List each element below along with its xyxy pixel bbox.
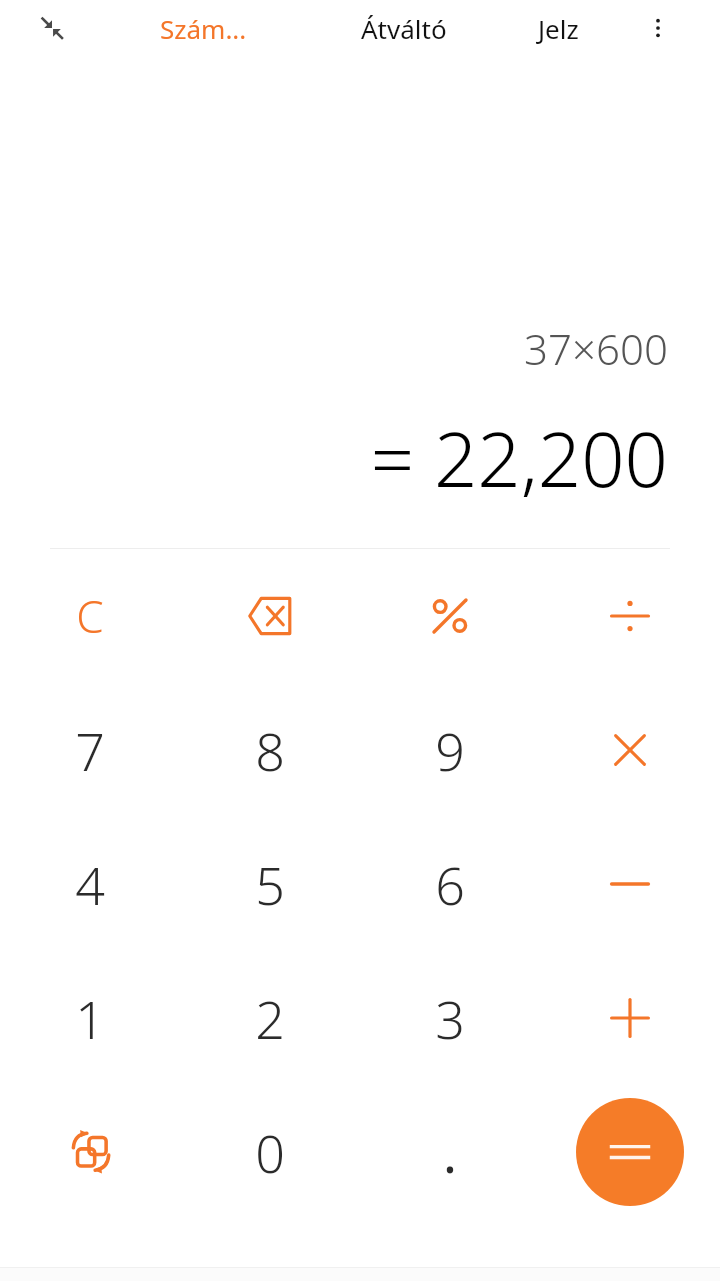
button[interactable]: 1 xyxy=(0,951,180,1085)
button[interactable]: Előzmények xyxy=(0,1085,180,1219)
staticText: 6 xyxy=(435,849,465,920)
button[interactable]: További lehetőségek xyxy=(636,6,680,50)
staticText: = 22,200 xyxy=(370,406,668,510)
staticText: Átváltó xyxy=(361,11,447,46)
button[interactable]: Szorzás xyxy=(540,683,720,817)
staticText: Szám... xyxy=(160,11,247,46)
button[interactable]: . xyxy=(360,1085,540,1219)
staticText: C xyxy=(76,586,104,646)
button[interactable]: 8 xyxy=(180,683,360,817)
staticText: 8 xyxy=(255,715,285,786)
staticText: 7 xyxy=(75,715,105,786)
button[interactable]: 7 xyxy=(0,683,180,817)
staticText: 9 xyxy=(435,715,465,786)
button[interactable]: Összecsukás xyxy=(30,6,74,50)
button[interactable]: 6 xyxy=(360,817,540,951)
button[interactable]: 0 xyxy=(180,1085,360,1219)
staticText: 37×600 xyxy=(524,320,668,377)
button[interactable]: 4 xyxy=(0,817,180,951)
button[interactable]: Kivonás xyxy=(540,817,720,951)
button[interactable]: Szám... xyxy=(130,0,276,56)
button[interactable]: Átváltó xyxy=(324,0,484,56)
button[interactable]: 9 xyxy=(360,683,540,817)
button[interactable]: C xyxy=(0,549,180,683)
button[interactable]: Törlés xyxy=(180,549,360,683)
staticText: 2 xyxy=(255,983,285,1054)
staticText: 3 xyxy=(435,983,465,1054)
button[interactable]: Jelz xyxy=(520,0,630,56)
staticText: 4 xyxy=(75,849,105,920)
staticText: 1 xyxy=(75,983,105,1054)
button[interactable]: Osztás xyxy=(540,549,720,683)
button[interactable]: 2 xyxy=(180,951,360,1085)
button[interactable]: Egyenlő xyxy=(576,1098,684,1206)
button[interactable]: 5 xyxy=(180,817,360,951)
staticText: . xyxy=(443,1117,457,1188)
staticText: 5 xyxy=(255,849,285,920)
button[interactable]: Összeadás xyxy=(540,951,720,1085)
staticText: Jelz xyxy=(538,11,579,46)
staticText: 0 xyxy=(255,1117,285,1188)
button[interactable]: Százalék xyxy=(360,549,540,683)
button[interactable]: 3 xyxy=(360,951,540,1085)
